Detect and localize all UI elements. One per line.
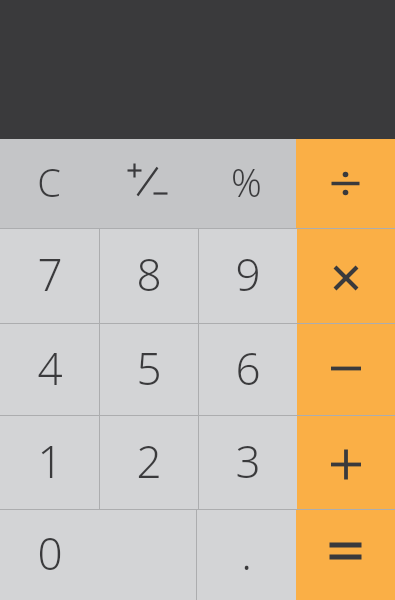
staticText: 6	[235, 338, 261, 398]
button[interactable]: Clear	[0, 139, 98, 228]
staticText: 2	[136, 431, 162, 491]
button[interactable]: 3	[199, 416, 297, 509]
button[interactable]: Plus	[297, 416, 395, 509]
button[interactable]: Equals	[296, 510, 395, 600]
button[interactable]: .	[197, 510, 296, 600]
staticText: 4	[37, 338, 63, 398]
button[interactable]: Multiply	[297, 229, 395, 323]
staticText: .	[241, 523, 252, 583]
button[interactable]: 5	[100, 324, 198, 415]
button[interactable]: 0	[0, 510, 196, 600]
button[interactable]: Divide	[296, 139, 395, 228]
button[interactable]: 9	[199, 229, 297, 323]
button[interactable]: 6	[199, 324, 297, 415]
button[interactable]: Percent	[197, 139, 296, 228]
button[interactable]: Minus	[297, 324, 395, 415]
button[interactable]: 2	[100, 416, 198, 509]
button[interactable]: 4	[0, 324, 99, 415]
staticText: 5	[136, 338, 162, 398]
staticText: 3	[235, 431, 261, 491]
button[interactable]: 8	[100, 229, 198, 323]
staticText: 1	[37, 431, 63, 491]
staticText: 7	[37, 244, 63, 304]
staticText: 9	[235, 244, 261, 304]
staticText: %	[231, 156, 262, 208]
button[interactable]: Plus minus, toggle sign	[98, 139, 197, 228]
button[interactable]: 1	[0, 416, 99, 509]
staticText: C	[37, 156, 61, 208]
staticText: 0	[37, 523, 63, 583]
staticText: 8	[136, 244, 162, 304]
button[interactable]: 7	[0, 229, 99, 323]
